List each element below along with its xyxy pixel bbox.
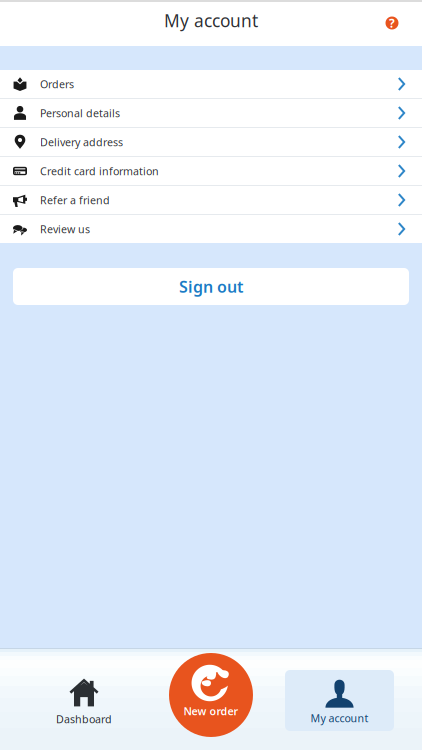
button[interactable]: Refer a friend — [0, 186, 422, 214]
staticText: Delivery address — [40, 135, 123, 149]
button[interactable]: Help — [374, 5, 410, 41]
button[interactable]: Sign out — [13, 268, 409, 305]
staticText: New order — [183, 704, 238, 718]
staticText: My account — [164, 9, 258, 32]
staticText: My account — [310, 711, 368, 725]
button[interactable]: Personal details — [0, 99, 422, 127]
button[interactable]: Credit card information — [0, 157, 422, 185]
staticText: Credit card information — [40, 164, 159, 178]
staticText: Review us — [40, 222, 90, 236]
button[interactable]: Orders — [0, 70, 422, 98]
staticText: Sign out — [179, 276, 243, 297]
staticText: Personal details — [40, 106, 120, 120]
button[interactable]: New order — [169, 653, 253, 737]
staticText: Dashboard — [56, 712, 112, 726]
button[interactable]: My account — [285, 670, 394, 731]
button[interactable]: Review us — [0, 215, 422, 243]
button[interactable]: Delivery address — [0, 128, 422, 156]
button[interactable]: Dashboard — [0, 648, 168, 750]
staticText: Orders — [40, 77, 74, 91]
staticText: ? — [389, 15, 395, 31]
staticText: Refer a friend — [40, 193, 110, 207]
